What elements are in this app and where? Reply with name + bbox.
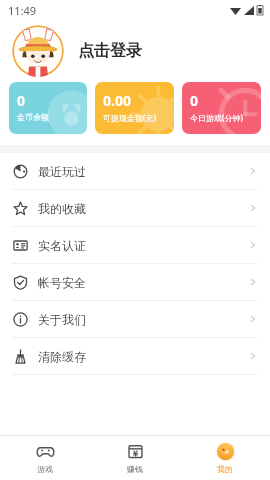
staticText: 0 (17, 91, 26, 110)
staticText: 金币余额 (17, 112, 49, 122)
staticText: 我的收藏 (38, 201, 86, 216)
button[interactable]: 赚钱 (90, 436, 180, 480)
staticText: 赚钱 (127, 464, 143, 474)
staticText: 帐号安全 (38, 275, 86, 290)
button[interactable]: 0 (182, 82, 261, 134)
staticText: 我的 (217, 464, 233, 474)
button[interactable]: 点击登录 (0, 20, 270, 82)
button[interactable]: 清除缓存 (0, 338, 270, 374)
staticText: 实名认证 (38, 238, 86, 253)
staticText: 今日游戏(分钟) (190, 112, 243, 123)
staticText: 0 (190, 91, 199, 110)
button[interactable]: 帐号安全 (0, 264, 270, 300)
button[interactable]: 实名认证 (0, 227, 270, 263)
staticText: 11:49 (8, 3, 37, 18)
staticText: 0.00 (103, 91, 131, 110)
button[interactable]: 0 (9, 82, 87, 134)
button[interactable]: 0.00 (95, 82, 174, 134)
button[interactable]: 游戏 (0, 436, 90, 480)
staticText: 关于我们 (38, 312, 86, 327)
staticText: 最近玩过 (38, 164, 86, 179)
staticText: 清除缓存 (38, 349, 86, 364)
button[interactable]: 最近玩过 (0, 153, 270, 189)
button[interactable]: 我的收藏 (0, 190, 270, 226)
staticText: 游戏 (37, 464, 53, 474)
button[interactable]: 我的 (180, 436, 270, 480)
button[interactable]: 关于我们 (0, 301, 270, 337)
staticText: 可提现金额(元) (103, 112, 156, 123)
staticText: 点击登录 (78, 41, 142, 61)
